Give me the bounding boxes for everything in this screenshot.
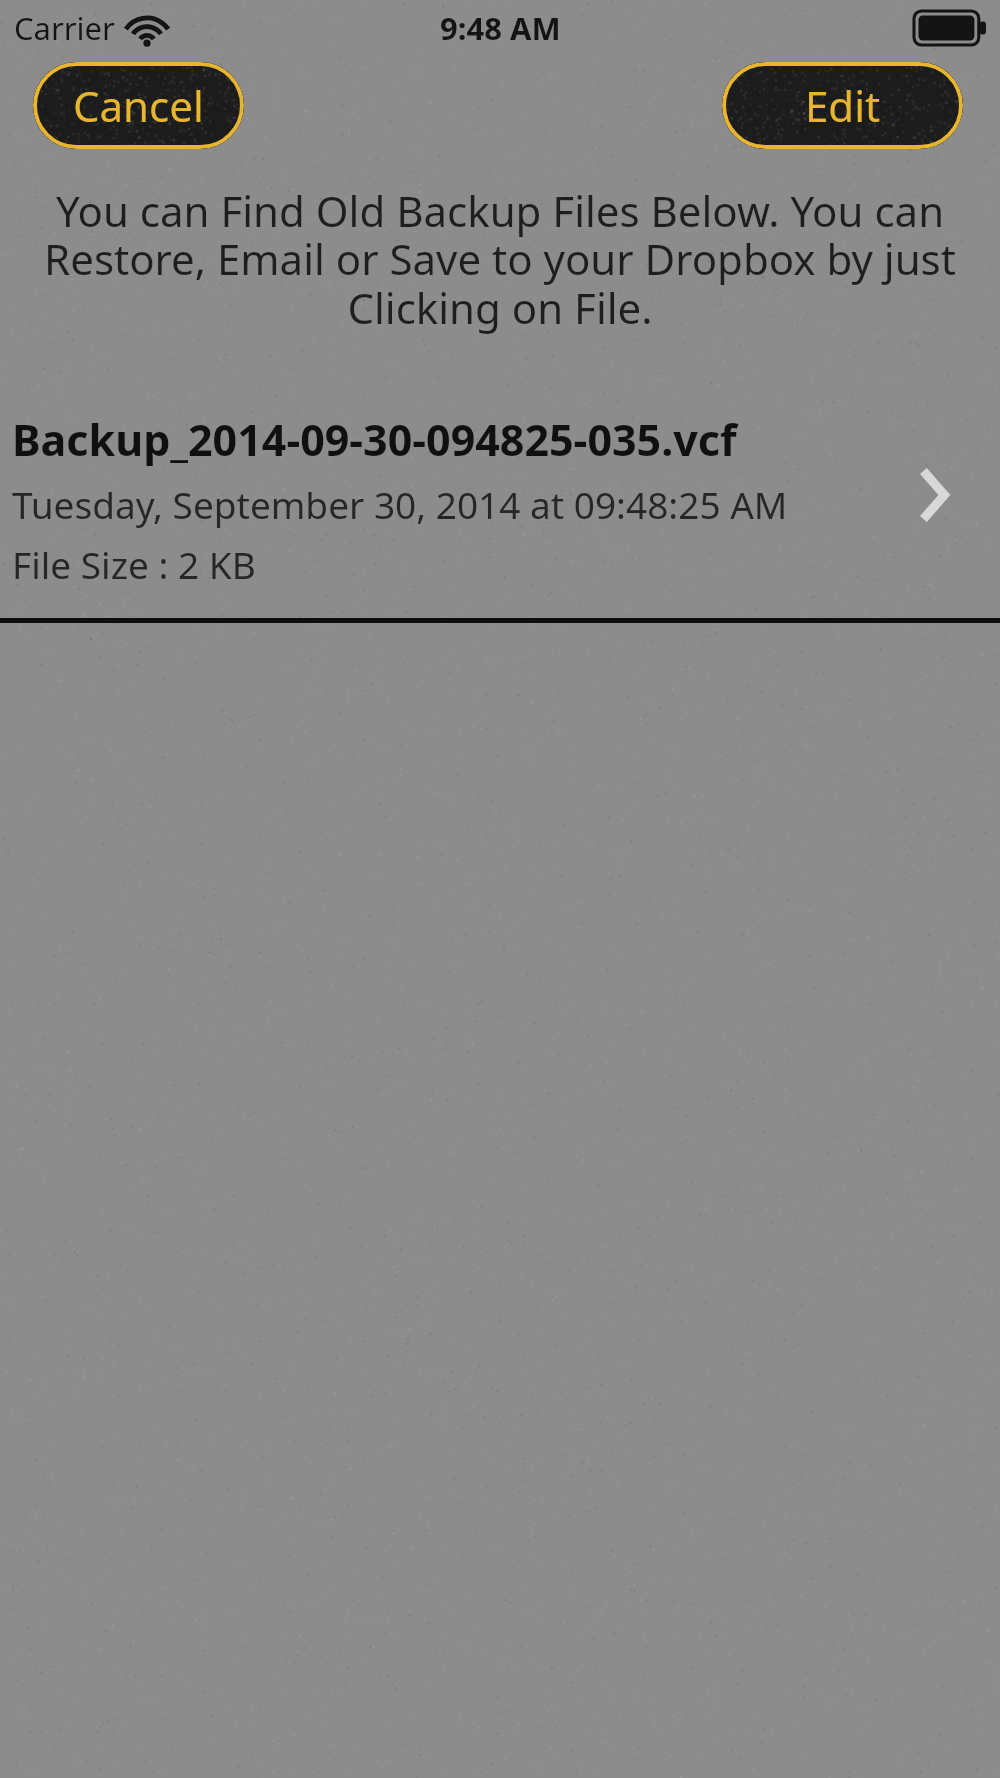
- staticText: You can Find Old Backup Files Below. You…: [22, 182, 978, 337]
- staticText: File Size : 2 KB: [12, 539, 256, 589]
- button[interactable]: Cancel: [33, 62, 244, 149]
- staticText: 9:48 AM: [440, 7, 561, 49]
- staticText: Cancel: [73, 77, 204, 134]
- staticText: Backup_2014-09-30-094825-035.vcf: [12, 410, 737, 469]
- staticText: Tuesday, September 30, 2014 at 09:48:25 …: [12, 479, 788, 529]
- staticText: Edit: [805, 77, 881, 134]
- button[interactable]: Edit: [722, 62, 963, 149]
- staticText: Carrier: [14, 7, 115, 49]
- other: Open backup file details: [905, 460, 961, 530]
- button[interactable]: Backup_2014-09-30-094825-035.vcf: [0, 381, 1000, 618]
